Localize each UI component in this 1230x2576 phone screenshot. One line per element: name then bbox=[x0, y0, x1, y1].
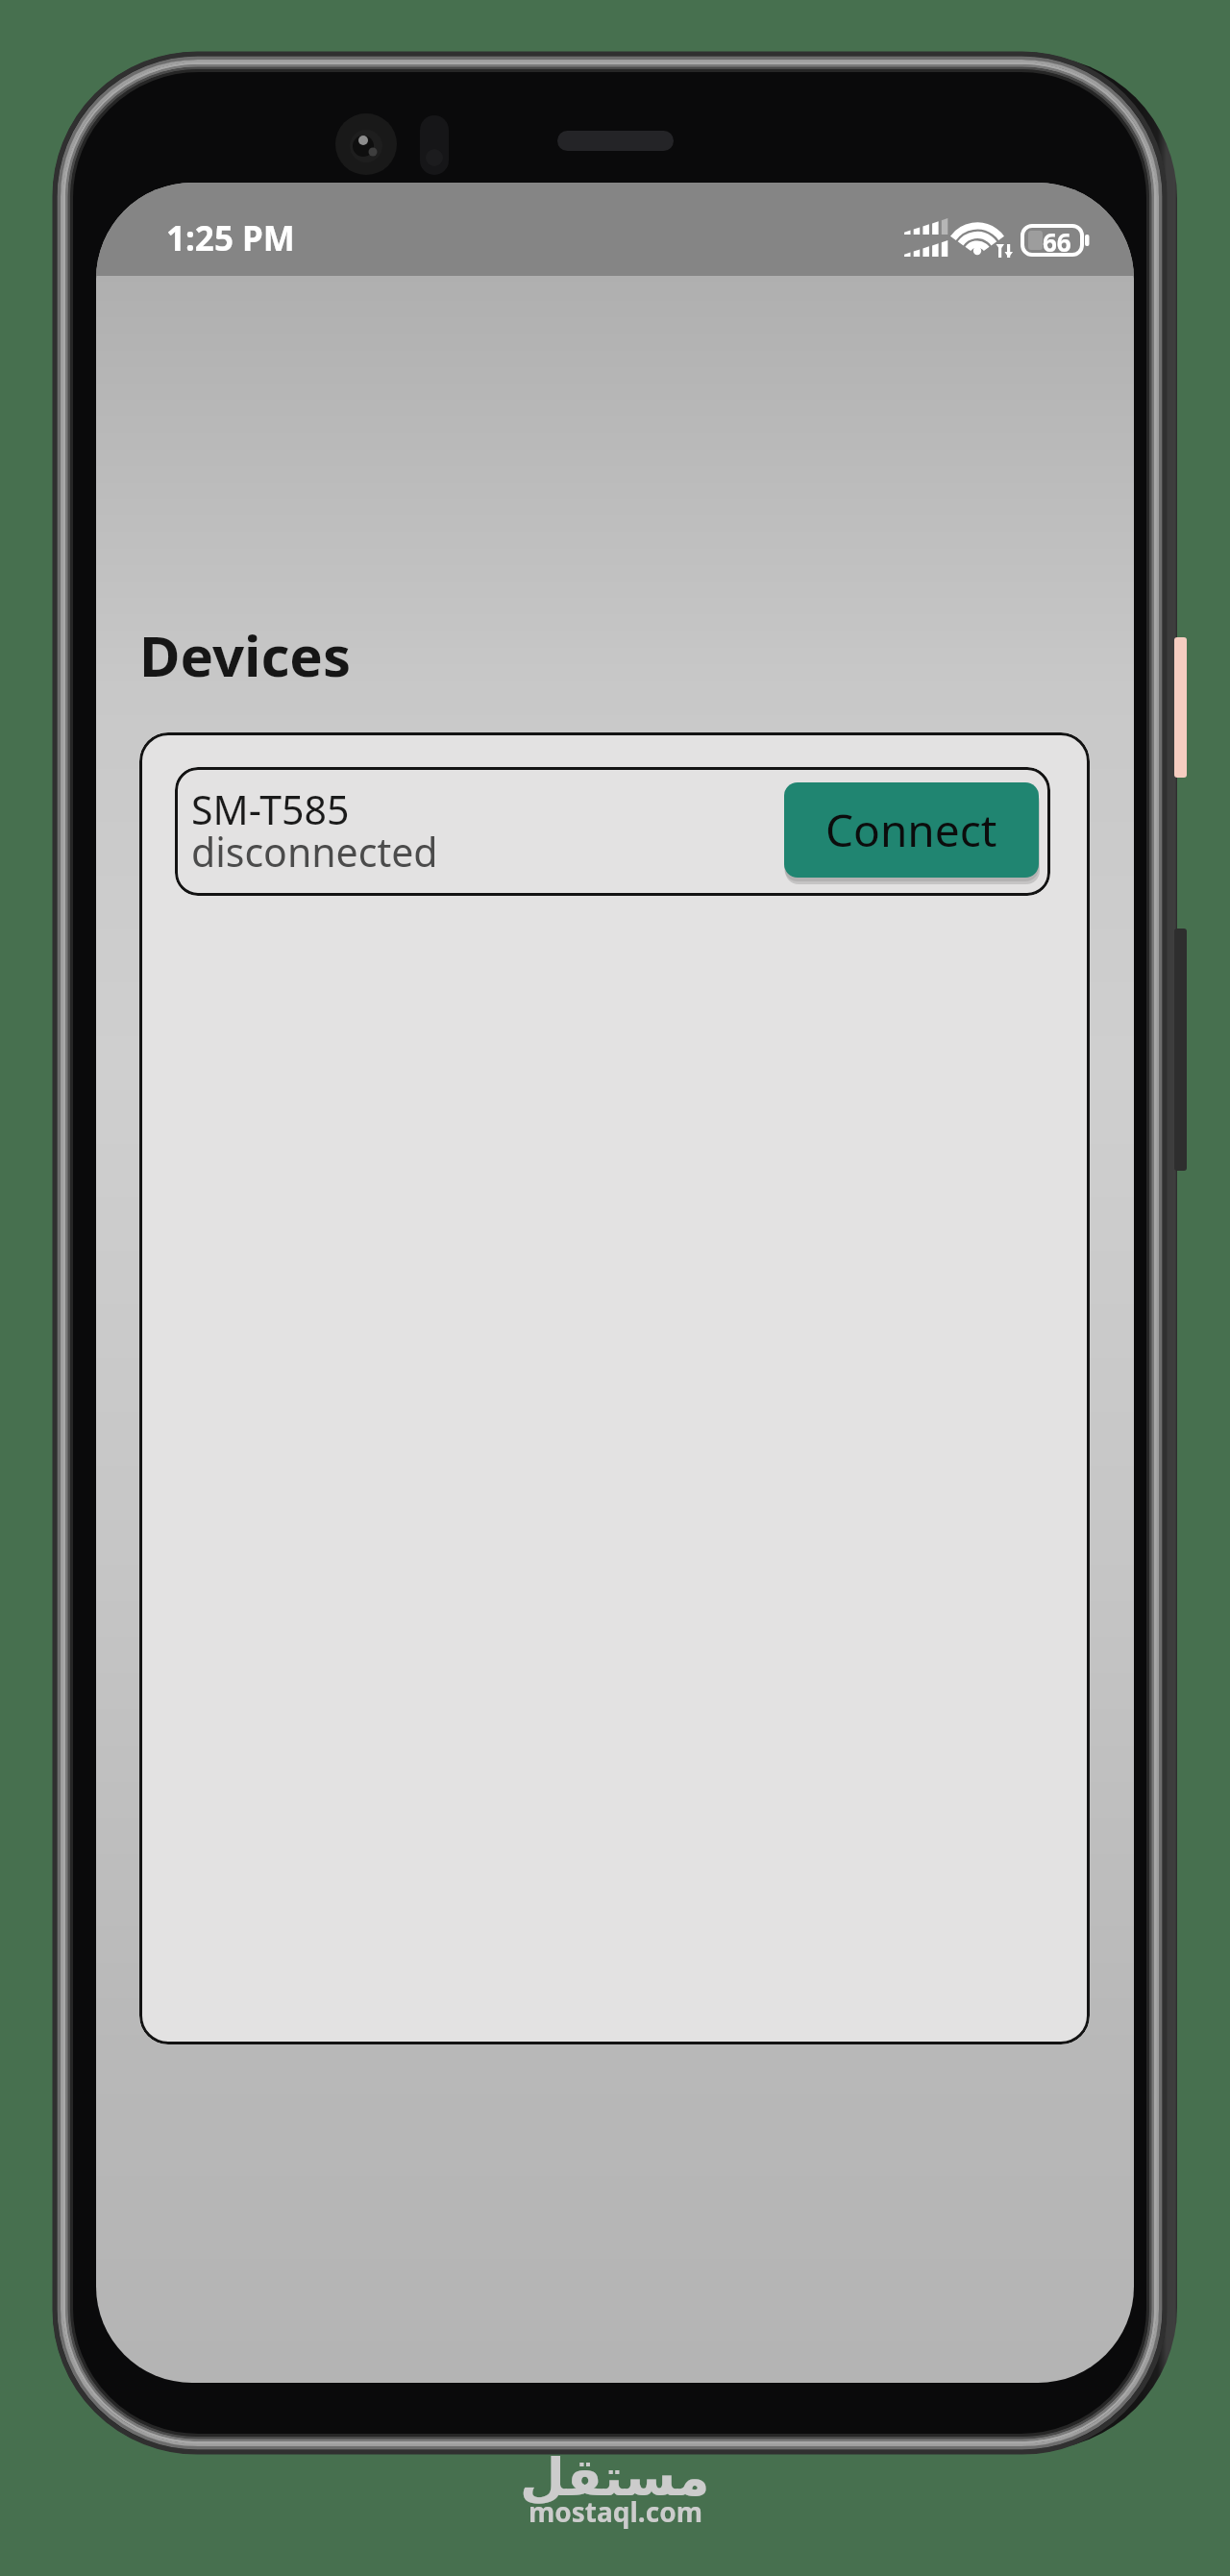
button[interactable]: SM-T585 bbox=[175, 767, 1050, 896]
button[interactable]: Volume bbox=[1174, 637, 1187, 778]
staticText: disconnected bbox=[191, 825, 438, 879]
staticText: SM-T585 bbox=[191, 782, 350, 836]
staticText: مستقل bbox=[520, 2447, 710, 2508]
button[interactable]: Power bbox=[1174, 929, 1187, 1171]
staticText: 1:25 PM bbox=[166, 215, 295, 261]
staticText: 66 bbox=[1043, 225, 1071, 259]
button[interactable]: Connect bbox=[784, 782, 1039, 878]
staticText: mostaql.com bbox=[529, 2493, 702, 2530]
staticText: Devices bbox=[139, 617, 352, 693]
staticText: Connect bbox=[825, 800, 997, 860]
